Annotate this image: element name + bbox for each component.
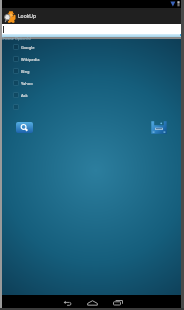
button[interactable]: Home (80, 295, 105, 310)
button[interactable]: Recent apps (105, 295, 130, 310)
staticText: LookUp (18, 13, 37, 20)
staticText: Bing (21, 69, 30, 74)
button[interactable] (0, 101, 184, 113)
staticText: Yahoo (21, 81, 33, 86)
staticText: Google (21, 45, 35, 50)
button[interactable]: Search (16, 122, 33, 133)
button[interactable]: Back (55, 295, 80, 310)
button[interactable]: Bing (0, 65, 184, 77)
button[interactable]: Yahoo (0, 77, 184, 89)
staticText: Wikipedia (21, 57, 40, 62)
button[interactable]: Ask (0, 89, 184, 101)
button[interactable]: Google (0, 41, 184, 53)
button[interactable] (1, 24, 183, 34)
staticText: Choose Option(s) (1, 36, 31, 41)
staticText: Ask (21, 93, 28, 98)
button[interactable]: Save (149, 119, 168, 135)
button[interactable]: Wikipedia (0, 53, 184, 65)
